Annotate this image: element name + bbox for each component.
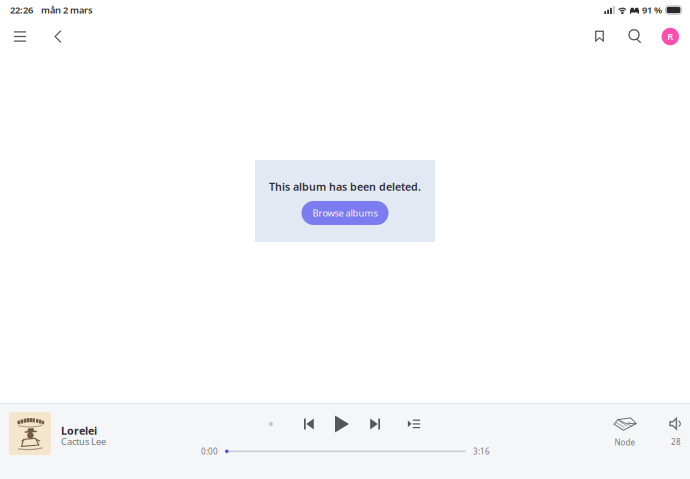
button[interactable]: Search: [622, 23, 648, 49]
button[interactable]: Previous: [298, 413, 320, 435]
staticText: Node: [614, 437, 635, 448]
staticText: 3:16: [473, 446, 490, 457]
button[interactable]: Play: [331, 413, 353, 435]
staticText: 28: [671, 436, 681, 447]
staticText: Browse albums: [312, 207, 377, 219]
button[interactable]: Browse albums: [301, 201, 388, 225]
button[interactable]: Menu: [8, 23, 32, 49]
button[interactable]: Queue: [403, 413, 425, 435]
staticText: This album has been deleted.: [269, 179, 421, 194]
button[interactable]: Node: [601, 417, 649, 448]
staticText: 0:00: [201, 446, 218, 457]
button[interactable]: 28: [657, 417, 690, 447]
staticText: Cactus Lee: [61, 435, 106, 448]
button[interactable]: Account: [661, 28, 679, 45]
staticText: 91 %: [642, 4, 662, 16]
button[interactable]: Bookmarks: [586, 23, 612, 49]
staticText: mån 2 mars: [41, 4, 93, 16]
staticText: R: [667, 30, 673, 43]
staticText: Lorelei: [61, 423, 97, 438]
button[interactable]: Back: [46, 23, 70, 49]
button[interactable]: Next: [364, 413, 386, 435]
staticText: 22:26: [10, 4, 33, 16]
button[interactable]: Lorelei: [9, 412, 159, 455]
